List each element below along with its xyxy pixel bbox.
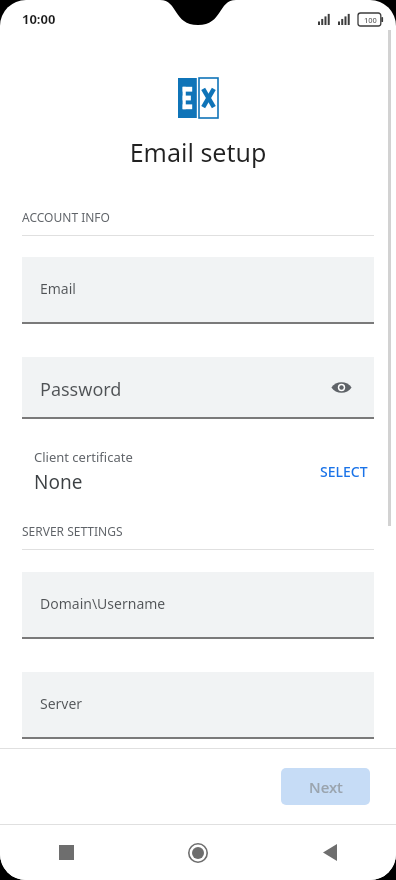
staticText: Server xyxy=(40,694,83,713)
staticText: SELECT xyxy=(320,462,368,481)
button[interactable]: Domain\Username xyxy=(22,572,374,639)
staticText: 10:00 xyxy=(22,10,56,28)
staticText: SERVER SETTINGS xyxy=(22,523,123,539)
button[interactable]: Next xyxy=(281,768,370,805)
button[interactable]: Client certificate xyxy=(22,448,374,495)
button[interactable]: Email xyxy=(22,257,374,324)
staticText: None xyxy=(34,469,83,495)
staticText: Password xyxy=(40,377,122,402)
button[interactable]: Server xyxy=(22,672,374,739)
staticText: Email xyxy=(40,279,76,298)
button[interactable]: Back xyxy=(264,825,396,880)
staticText: Client certificate xyxy=(34,448,133,466)
button[interactable]: Show password xyxy=(324,370,358,404)
button[interactable]: Home xyxy=(132,825,264,880)
staticText: 100 xyxy=(364,15,377,25)
button[interactable]: SELECT xyxy=(314,454,374,489)
staticText: ACCOUNT INFO xyxy=(22,209,110,225)
staticText: Domain\Username xyxy=(40,594,166,613)
button[interactable]: Password xyxy=(22,357,374,419)
button[interactable]: Recent apps xyxy=(0,825,132,880)
staticText: Email setup xyxy=(0,135,396,169)
staticText: Next xyxy=(309,777,343,797)
